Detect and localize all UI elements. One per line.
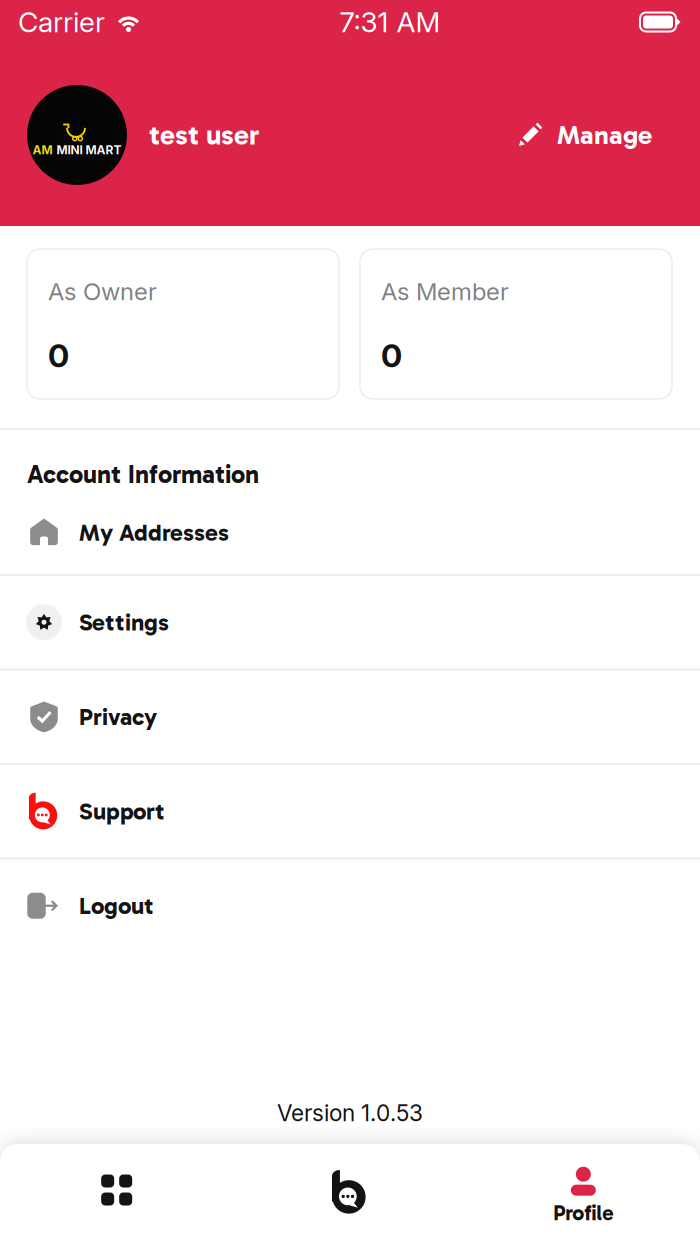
button[interactable]: Privacy — [0, 670, 700, 763]
staticText: Version 1.0.53 — [277, 1099, 423, 1127]
button[interactable]: Chat — [233, 1144, 467, 1244]
staticText: As Member — [381, 277, 509, 306]
staticText: Settings — [79, 608, 169, 637]
staticText: 0 — [381, 336, 402, 375]
staticText: Logout — [79, 891, 154, 920]
staticText: Privacy — [79, 702, 157, 731]
staticText: MINI MART — [56, 143, 121, 157]
staticText: As Owner — [48, 277, 157, 306]
button[interactable]: Manage — [505, 103, 700, 167]
staticText: 7:31 AM — [339, 5, 440, 39]
button[interactable]: My Addresses — [0, 491, 700, 574]
staticText: AM — [32, 143, 52, 157]
staticText: Manage — [557, 119, 652, 151]
button[interactable]: Home — [0, 1144, 233, 1244]
staticText: 0 — [48, 336, 69, 375]
staticText: Profile — [553, 1200, 613, 1226]
staticText: My Addresses — [79, 518, 229, 547]
staticText: Support — [79, 797, 165, 826]
staticText: test user — [149, 118, 259, 152]
button[interactable]: Settings — [0, 576, 700, 668]
button[interactable]: Support — [0, 765, 700, 857]
staticText: Carrier — [18, 5, 105, 39]
button[interactable]: Profile — [467, 1144, 700, 1244]
button[interactable]: Logout — [0, 859, 700, 952]
staticText: Account Information — [27, 459, 259, 490]
